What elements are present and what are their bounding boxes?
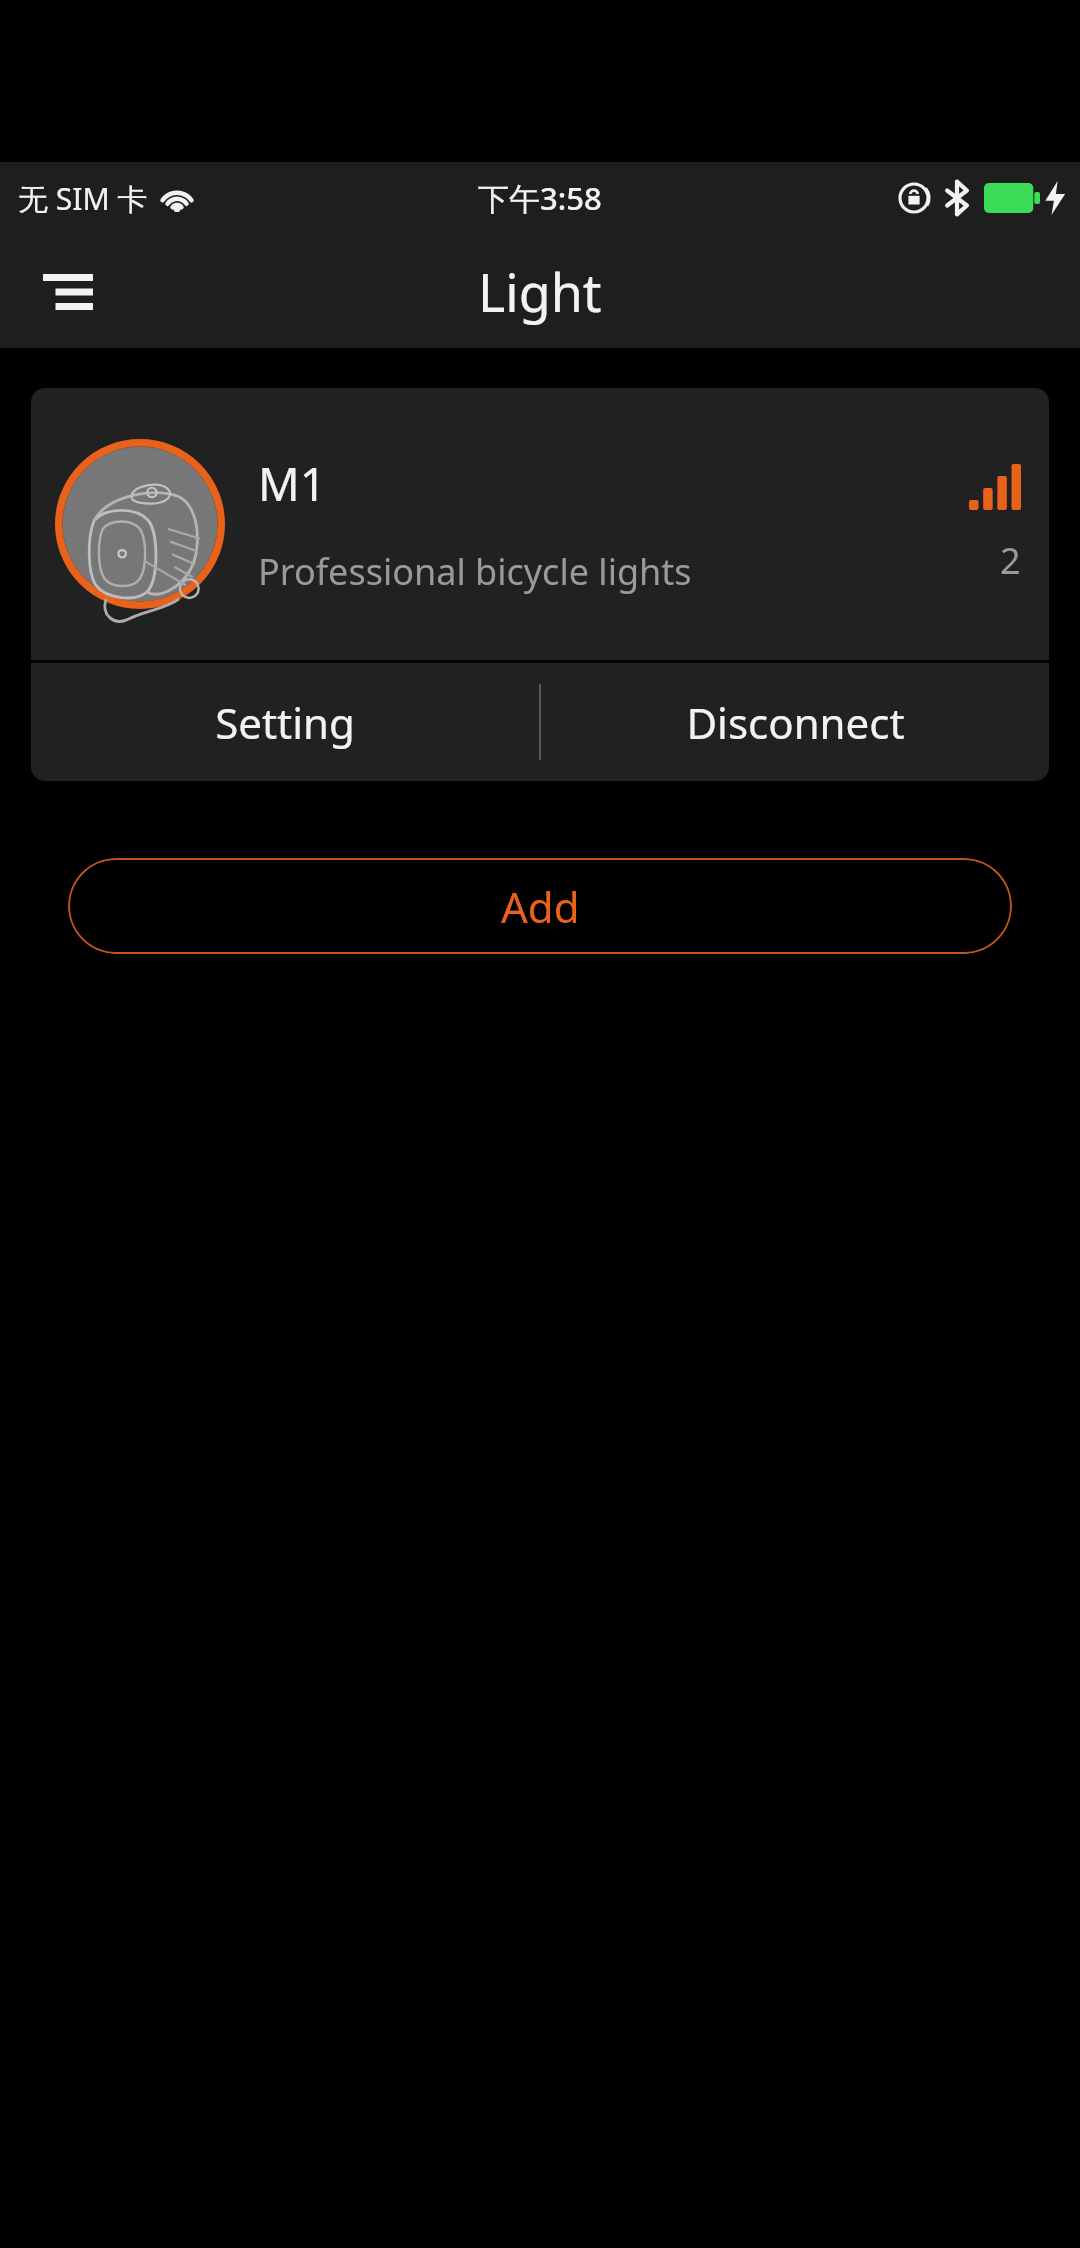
staticText: Professional bicycle lights <box>258 547 692 596</box>
button[interactable]: Setting <box>31 663 539 781</box>
button[interactable]: M1 <box>31 388 1049 660</box>
staticText: 2 <box>1000 536 1021 585</box>
staticText: Add <box>501 878 580 935</box>
staticText: Setting <box>215 694 355 751</box>
button[interactable]: Disconnect <box>541 663 1049 781</box>
button[interactable]: Menu <box>30 253 106 329</box>
staticText: M1 <box>258 452 327 515</box>
button[interactable]: Add <box>68 858 1012 954</box>
staticText: 无 SIM 卡 <box>18 178 148 219</box>
staticText: Disconnect <box>686 694 905 751</box>
staticText: Light <box>478 256 602 327</box>
staticText: 下午3:58 <box>478 177 602 219</box>
